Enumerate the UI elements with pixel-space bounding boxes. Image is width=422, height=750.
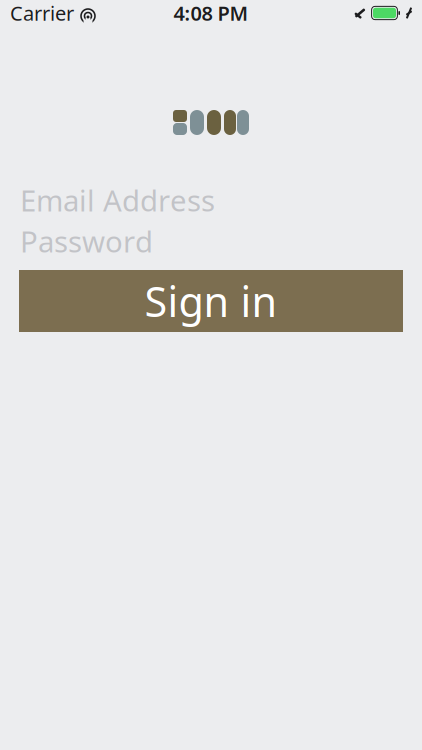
- staticText: Password: [20, 221, 153, 260]
- staticText: Email Address: [20, 180, 215, 219]
- staticText: Sign in: [144, 274, 277, 328]
- button[interactable]: Email Address: [0, 180, 422, 220]
- staticText: Carrier: [10, 0, 74, 26]
- button[interactable]: Password: [0, 221, 422, 261]
- button[interactable]: Sign in: [19, 270, 403, 332]
- staticText: 4:08 PM: [173, 0, 248, 26]
